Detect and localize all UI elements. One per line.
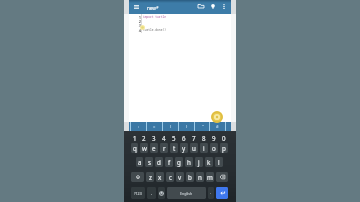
button[interactable]: Backspace (216, 172, 228, 182)
staticText: 5 (172, 134, 176, 142)
staticText: 1 (135, 15, 141, 20)
staticText: : (138, 124, 140, 129)
button[interactable]: Enter (216, 187, 228, 199)
button[interactable]: z (146, 172, 154, 182)
staticText: 2 (142, 134, 146, 142)
button[interactable]: Emoji (158, 187, 165, 199)
button[interactable]: 2 (139, 132, 149, 143)
button[interactable]: Run script (207, 0, 219, 12)
button[interactable]: 9 (209, 132, 219, 143)
staticText: ( (170, 124, 172, 129)
button[interactable]: k (205, 157, 213, 167)
button[interactable]: 4 (159, 132, 169, 143)
button[interactable]: m (206, 172, 214, 182)
staticText: " (202, 124, 204, 129)
button[interactable]: b (186, 172, 194, 182)
button[interactable]: w (140, 143, 148, 153)
button[interactable]: 6 (179, 132, 189, 143)
staticText: 2 (135, 19, 141, 24)
staticText: x (158, 173, 162, 181)
button[interactable]: a (136, 157, 143, 167)
button[interactable]: x (156, 172, 164, 182)
staticText: a (138, 158, 142, 166)
staticText: w (142, 144, 147, 152)
button[interactable]: v (176, 172, 184, 182)
button[interactable]: r (160, 143, 168, 153)
button[interactable]: g (175, 157, 183, 167)
button[interactable]: q (131, 143, 138, 153)
button[interactable]: 3 (149, 132, 159, 143)
button[interactable]: t (170, 143, 178, 153)
button[interactable]: 7 (189, 132, 199, 143)
button[interactable]: Comma (147, 187, 156, 199)
button[interactable]: More options (218, 0, 230, 12)
staticText: ) (186, 124, 188, 129)
staticText: v (178, 173, 182, 181)
button[interactable]: Insert " (195, 122, 210, 131)
button[interactable]: Open file (195, 0, 207, 12)
button[interactable]: English (167, 187, 206, 199)
staticText: o (212, 144, 216, 152)
staticText: 6 (182, 134, 186, 142)
staticText: new* (147, 5, 159, 11)
staticText: l (218, 158, 220, 166)
staticText: m (207, 173, 213, 181)
staticText: g (177, 158, 181, 166)
staticText: turtle.done() (143, 28, 166, 32)
staticText: s (148, 158, 151, 166)
staticText: j (198, 158, 200, 166)
button[interactable]: Symbols (131, 187, 145, 199)
staticText: f (168, 158, 171, 166)
staticText: , (151, 190, 153, 196)
button[interactable]: 1 (130, 132, 139, 143)
staticText: = (153, 124, 156, 129)
button[interactable]: u (190, 143, 198, 153)
button[interactable]: Insert ( (163, 122, 178, 131)
button[interactable]: 8 (199, 132, 209, 143)
button[interactable]: n (196, 172, 204, 182)
staticText: import turtle (143, 15, 166, 19)
button[interactable]: Insert = (147, 122, 162, 131)
staticText: d (157, 158, 161, 166)
button[interactable]: f (165, 157, 173, 167)
button[interactable]: s (145, 157, 153, 167)
staticText: c (169, 173, 172, 181)
button[interactable]: 0 (219, 132, 229, 143)
button[interactable]: p (220, 143, 228, 153)
staticText: 3 (135, 23, 141, 28)
button[interactable]: Open navigation drawer (130, 1, 142, 13)
button[interactable]: Period (208, 187, 214, 199)
staticText: k (207, 158, 211, 166)
staticText: y (182, 144, 186, 152)
staticText: English (180, 191, 193, 196)
staticText: 8 (202, 134, 206, 142)
staticText: p (222, 144, 226, 152)
staticText: . (210, 190, 212, 196)
button[interactable]: h (185, 157, 193, 167)
staticText: 7 (192, 134, 196, 142)
staticText: b (188, 173, 192, 181)
button[interactable]: e (150, 143, 158, 153)
button[interactable]: l (215, 157, 223, 167)
staticText: z (149, 173, 152, 181)
button[interactable]: i (200, 143, 208, 153)
staticText: e (152, 144, 156, 152)
button[interactable]: Shift (131, 172, 144, 182)
staticText: 3 (152, 134, 156, 142)
button[interactable]: Insert ) (179, 122, 194, 131)
staticText: 0 (222, 134, 226, 142)
button[interactable]: c (166, 172, 174, 182)
staticText: u (192, 144, 196, 152)
button[interactable]: Insert # (210, 122, 225, 131)
button[interactable]: d (155, 157, 163, 167)
staticText: h (187, 158, 191, 166)
staticText: t (173, 144, 176, 152)
button[interactable]: 5 (169, 132, 179, 143)
staticText: ?123 (134, 191, 142, 196)
button[interactable]: y (180, 143, 188, 153)
staticText: 4 (135, 28, 141, 33)
staticText: i (203, 144, 205, 152)
button[interactable]: Insert : (131, 122, 146, 131)
button[interactable]: j (195, 157, 203, 167)
button[interactable]: o (210, 143, 218, 153)
